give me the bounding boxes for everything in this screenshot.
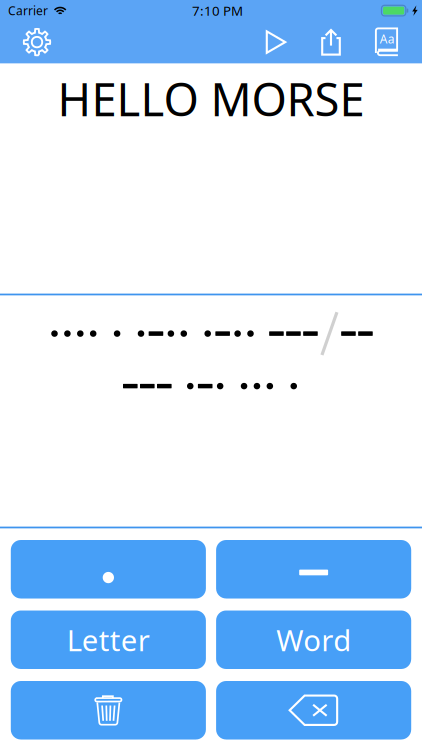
button[interactable]: Word <box>216 610 411 669</box>
staticText: Word <box>276 620 351 659</box>
staticText: HELLO MORSE <box>57 69 364 129</box>
button[interactable] <box>216 681 411 739</box>
button[interactable] <box>216 540 411 598</box>
button[interactable]: Letter <box>11 610 206 669</box>
button[interactable]: Dictionary <box>365 21 408 63</box>
staticText: Carrier <box>8 3 48 18</box>
staticText: Aa <box>380 31 395 47</box>
button[interactable]: Settings <box>15 21 59 63</box>
staticText: Letter <box>67 620 150 659</box>
button[interactable]: Play <box>256 21 296 63</box>
button[interactable] <box>11 540 206 598</box>
button[interactable]: Share <box>311 21 351 63</box>
button[interactable] <box>11 681 206 739</box>
staticText: 7:10 PM <box>192 2 243 19</box>
